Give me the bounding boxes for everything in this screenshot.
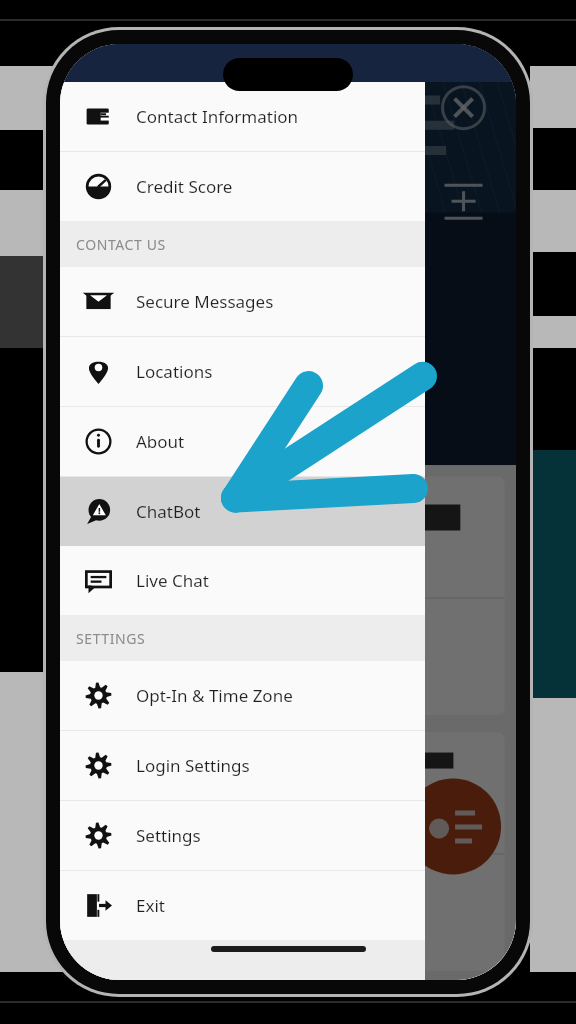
button[interactable]: ChatBot (60, 477, 425, 546)
button[interactable]: Secure Messages (60, 267, 425, 336)
button[interactable]: Login Settings (60, 731, 425, 800)
staticText: Live Chat (136, 569, 209, 592)
staticText: About (136, 430, 185, 453)
button[interactable]: About (60, 407, 425, 476)
other: Annotation arrow pointing to ChatBot (60, 44, 516, 980)
button[interactable]: Exit (60, 871, 425, 940)
button[interactable]: Contact Information (60, 82, 425, 151)
staticText: Secure Messages (136, 290, 274, 313)
button[interactable]: Settings (60, 801, 425, 870)
staticText: Opt-In & Time Zone (136, 684, 293, 707)
staticText: Settings (136, 824, 201, 847)
staticText: CONTACT US (76, 235, 166, 254)
button[interactable]: Live Chat (60, 546, 425, 615)
staticText: SETTINGS (76, 629, 146, 648)
staticText: ChatBot (136, 500, 201, 523)
staticText: Exit (136, 894, 165, 917)
staticText: Contact Information (136, 105, 299, 128)
button[interactable]: Opt-In & Time Zone (60, 661, 425, 730)
staticText: Locations (136, 360, 213, 383)
staticText: Login Settings (136, 754, 250, 777)
button[interactable]: Credit Score (60, 152, 425, 221)
staticText: Credit Score (136, 175, 233, 198)
button[interactable]: Locations (60, 337, 425, 406)
